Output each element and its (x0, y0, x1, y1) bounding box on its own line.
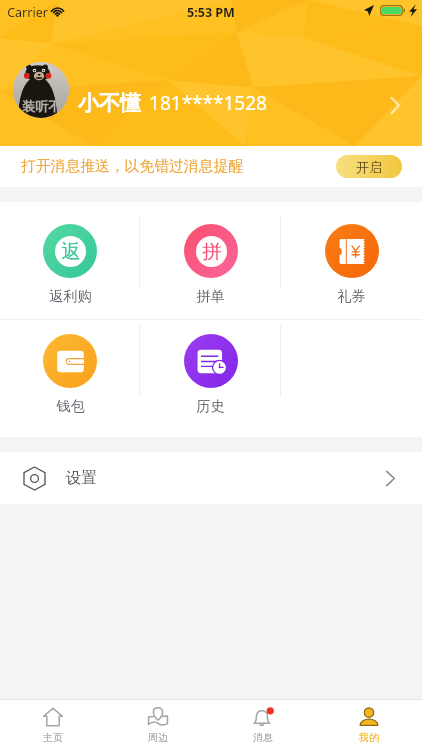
button[interactable]: 主页 (0, 700, 105, 750)
button[interactable]: 设置 (0, 452, 422, 504)
staticText: 拼 (202, 239, 222, 264)
button[interactable]: 装听不 (0, 0, 422, 146)
staticText: 设置 (66, 468, 97, 488)
button[interactable]: 钱包 (0, 319, 140, 437)
button[interactable]: 我的 (316, 700, 422, 750)
staticText: 周边 (148, 731, 168, 744)
staticText: 装听不 (22, 98, 61, 114)
staticText: 我的 (359, 731, 379, 744)
button[interactable]: 周边 (105, 700, 210, 750)
button[interactable]: 开启 (336, 155, 402, 178)
staticText: 钱包 (56, 397, 85, 415)
staticText: 消息 (253, 731, 273, 744)
button[interactable]: 历史 (140, 319, 281, 437)
staticText: 181****1528 (149, 90, 267, 116)
staticText: 5:53 PM (187, 4, 235, 21)
staticText: 打开消息推送，以免错过消息提醒 (21, 157, 243, 176)
button[interactable]: 消息 (210, 700, 316, 750)
staticText: 历史 (196, 397, 225, 415)
staticText: 小不懂 (78, 90, 141, 116)
button[interactable]: 拼 (140, 202, 281, 319)
staticText: 返 (61, 239, 81, 264)
staticText: 拼单 (196, 287, 225, 305)
button[interactable]: 礼券 (281, 202, 422, 319)
staticText: 主页 (43, 731, 63, 744)
staticText: 礼券 (337, 287, 366, 305)
staticText: Carrier (7, 4, 48, 21)
staticText: 返利购 (49, 287, 92, 305)
button[interactable]: 返 (0, 202, 140, 319)
staticText: 开启 (356, 159, 382, 175)
